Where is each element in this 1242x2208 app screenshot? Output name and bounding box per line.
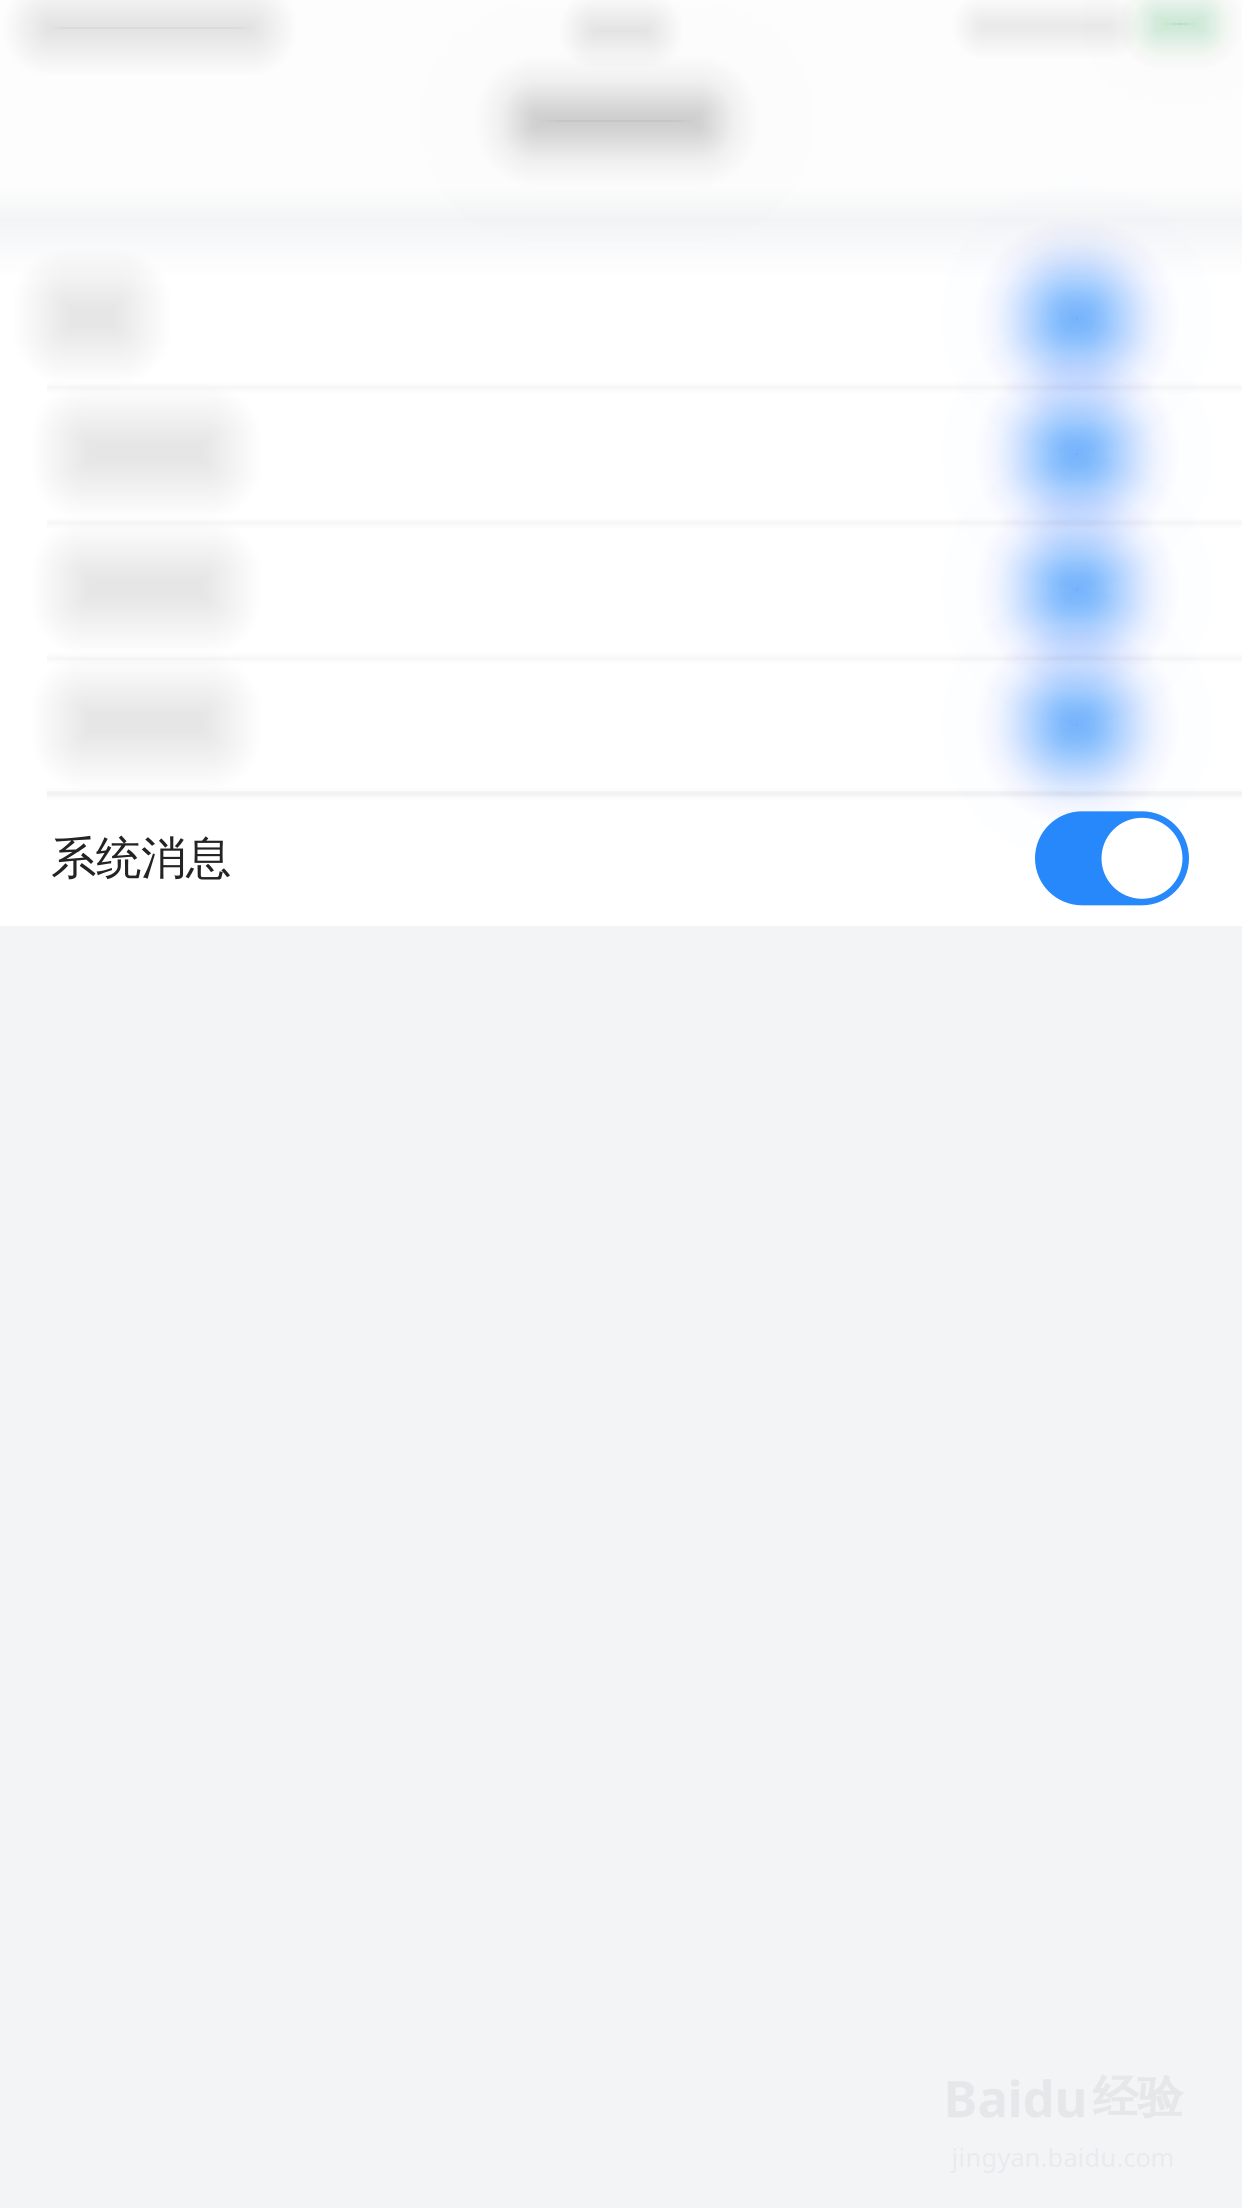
- button[interactable]: 系统消息: [0, 791, 1242, 925]
- staticText: Baidu: [943, 2064, 1087, 2131]
- button[interactable]: 通知设置项 3: [0, 521, 1242, 654]
- staticText: 系统消息: [51, 830, 231, 886]
- button[interactable]: 通知设置项 1: [0, 250, 1242, 383]
- button[interactable]: 通知设置项 2: [0, 386, 1242, 519]
- staticText: 经验: [1092, 2070, 1182, 2125]
- button[interactable]: 通知设置项 4: [0, 656, 1242, 789]
- staticText: jingyan.baidu.com: [951, 2140, 1174, 2174]
